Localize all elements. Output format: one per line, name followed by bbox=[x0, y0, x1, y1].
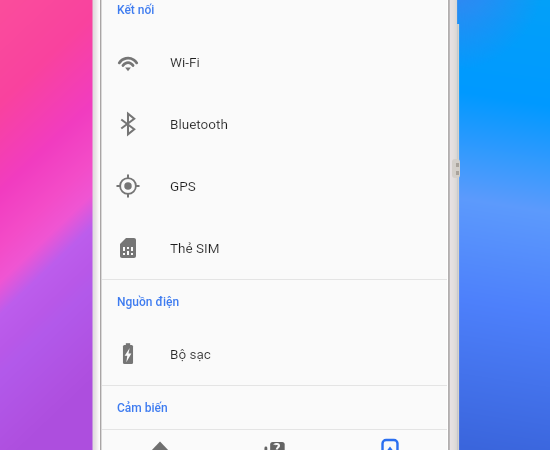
button[interactable]: Recents bbox=[332, 430, 447, 450]
staticText: Kết nối bbox=[117, 3, 155, 17]
staticText: Cảm biến bbox=[117, 401, 168, 415]
staticText: Wi-Fi bbox=[170, 54, 200, 70]
staticText: Bluetooth bbox=[170, 116, 228, 132]
button[interactable]: GPS bbox=[102, 155, 447, 217]
button[interactable]: Wi-Fi bbox=[102, 31, 447, 93]
staticText: Thẻ SIM bbox=[170, 240, 220, 256]
button[interactable]: Bluetooth bbox=[102, 93, 447, 155]
button[interactable]: Back bbox=[102, 430, 217, 450]
button[interactable]: Home bbox=[217, 430, 332, 450]
staticText: GPS bbox=[170, 178, 196, 194]
staticText: Bộ sạc bbox=[170, 346, 211, 362]
button[interactable]: Thẻ SIM bbox=[102, 217, 447, 279]
button[interactable]: Bộ sạc bbox=[102, 323, 447, 385]
staticText: Nguồn điện bbox=[117, 295, 180, 309]
